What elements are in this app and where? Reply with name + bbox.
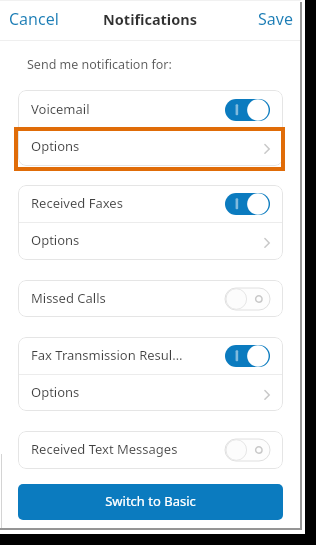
staticText: Cancel	[9, 8, 59, 30]
staticText: Missed Calls	[31, 289, 106, 307]
staticText: Voicemail	[31, 100, 90, 118]
button[interactable]: Off	[225, 439, 270, 461]
staticText: Options	[31, 383, 80, 401]
staticText: Options	[31, 231, 80, 249]
button[interactable]: Switch to Basic	[18, 484, 283, 520]
button[interactable]: Voicemail	[18, 91, 283, 128]
button[interactable]: Save	[257, 5, 294, 37]
button[interactable]: On	[225, 345, 270, 367]
button[interactable]: Missed Calls	[18, 281, 283, 316]
button[interactable]: Off	[225, 288, 270, 310]
button[interactable]: On	[225, 99, 270, 121]
staticText: Send me notification for:	[27, 56, 172, 73]
staticText: Fax Transmission Resul…	[31, 346, 183, 364]
staticText: Received Faxes	[31, 194, 123, 212]
staticText: Notifications	[103, 9, 197, 29]
button[interactable]: Received Text Messages	[18, 432, 283, 468]
button[interactable]: Options	[18, 375, 283, 411]
button[interactable]: On	[225, 193, 270, 215]
staticText: Switch to Basic	[105, 492, 196, 510]
button[interactable]: Options	[18, 129, 283, 165]
button[interactable]: Received Faxes	[18, 186, 283, 222]
staticText: Save	[258, 8, 293, 30]
staticText: Received Text Messages	[31, 440, 178, 458]
button[interactable]: Cancel	[8, 5, 60, 37]
button[interactable]: Options	[18, 223, 283, 259]
staticText: Options	[31, 137, 80, 155]
button[interactable]: Fax Transmission Resul…	[18, 338, 283, 374]
